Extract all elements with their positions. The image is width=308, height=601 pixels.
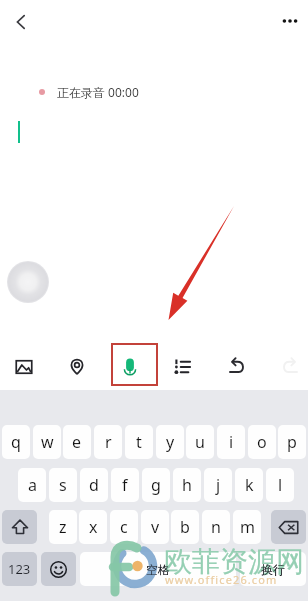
button[interactable]: t xyxy=(125,425,153,459)
button[interactable]: k xyxy=(235,468,263,502)
button[interactable]: e xyxy=(63,425,91,459)
button[interactable]: Back xyxy=(4,5,38,39)
button[interactable]: p xyxy=(278,425,306,459)
staticText: q xyxy=(11,431,21,453)
staticText: k xyxy=(245,474,254,496)
staticText: h xyxy=(182,474,192,496)
button[interactable]: 123 xyxy=(2,552,37,586)
staticText: 换行 xyxy=(261,562,285,577)
staticText: l xyxy=(278,474,283,496)
button[interactable]: l xyxy=(266,468,294,502)
staticText: e xyxy=(72,431,82,453)
button[interactable]: q xyxy=(2,425,30,459)
staticText: j xyxy=(216,474,221,496)
button[interactable]: More options xyxy=(274,5,306,37)
staticText: 欧菲资源网 xyxy=(164,544,304,579)
button[interactable]: v xyxy=(141,510,169,544)
button[interactable]: n xyxy=(202,510,230,544)
button[interactable]: Emoji xyxy=(41,552,76,586)
staticText: s xyxy=(59,474,67,496)
staticText: 123 xyxy=(8,560,31,578)
button[interactable]: d xyxy=(80,468,108,502)
button[interactable]: Backspace xyxy=(271,510,306,544)
staticText: m xyxy=(240,516,255,538)
button[interactable]: f xyxy=(111,468,139,502)
staticText: t xyxy=(136,431,142,453)
button[interactable]: a xyxy=(18,468,46,502)
button[interactable]: j xyxy=(204,468,232,502)
button[interactable]: m xyxy=(233,510,261,544)
button[interactable]: z xyxy=(49,510,77,544)
button[interactable]: h xyxy=(173,468,201,502)
staticText: y xyxy=(166,431,175,453)
button[interactable]: x xyxy=(79,510,107,544)
staticText: o xyxy=(257,431,267,453)
button[interactable]: 空格 xyxy=(80,552,236,586)
button[interactable]: w xyxy=(33,425,61,459)
button[interactable]: Location xyxy=(60,350,94,384)
staticText: v xyxy=(151,516,160,538)
staticText: 正在录音 00:00 xyxy=(57,84,139,100)
button[interactable]: 换行 xyxy=(240,552,306,586)
button[interactable]: g xyxy=(142,468,170,502)
button[interactable]: Redo xyxy=(273,350,307,384)
staticText: i xyxy=(229,431,234,453)
button[interactable]: y xyxy=(156,425,184,459)
staticText: g xyxy=(151,474,161,496)
staticText: d xyxy=(89,474,99,496)
staticText: b xyxy=(180,516,190,538)
staticText: n xyxy=(211,516,221,538)
staticText: www.office26.com xyxy=(165,572,278,587)
button[interactable]: b xyxy=(171,510,199,544)
staticText: u xyxy=(195,431,205,453)
staticText: 换行 xyxy=(261,562,285,577)
staticText: f xyxy=(122,474,128,496)
button[interactable]: Insert image xyxy=(7,350,41,384)
button[interactable]: u xyxy=(186,425,214,459)
staticText: 空格 xyxy=(146,562,170,577)
button[interactable]: r xyxy=(94,425,122,459)
button[interactable]: Shift xyxy=(2,510,37,544)
button[interactable]: List xyxy=(166,350,200,384)
button[interactable]: Undo xyxy=(220,350,254,384)
staticText: w xyxy=(41,431,54,453)
button[interactable]: i xyxy=(217,425,245,459)
staticText: x xyxy=(89,516,98,538)
button[interactable]: Voice input xyxy=(113,350,147,384)
button[interactable]: s xyxy=(49,468,77,502)
staticText: 空格 xyxy=(146,562,170,577)
staticText: a xyxy=(28,474,37,496)
staticText: c xyxy=(120,516,128,538)
staticText: p xyxy=(287,431,297,453)
button[interactable]: c xyxy=(110,510,138,544)
staticText: z xyxy=(59,516,67,538)
button[interactable]: o xyxy=(248,425,276,459)
staticText: r xyxy=(105,431,112,453)
